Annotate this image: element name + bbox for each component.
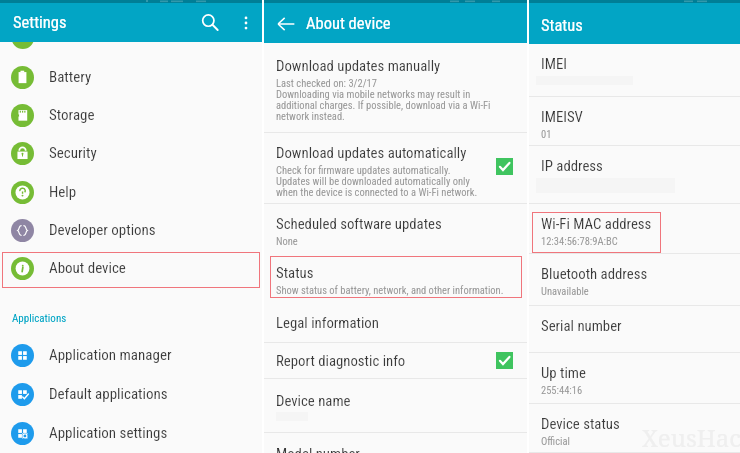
staticText: Application manager [49,346,172,364]
staticText: XeusHack [642,421,740,453]
staticText: 255:44:16 [541,384,583,396]
staticText: Battery [49,68,92,86]
button[interactable]: Default applications [0,375,262,413]
staticText: Bluetooth address [541,265,648,282]
button[interactable]: Wi-Fi MAC address [529,204,740,254]
staticText: About device [306,14,391,33]
staticText: Serial number [541,317,622,334]
staticText: IMEI [541,55,567,72]
staticText: Legal information [276,314,379,331]
staticText: Report diagnostic info [276,352,406,369]
button[interactable]: About device [0,249,262,287]
button[interactable]: Storage [0,96,262,134]
staticText: Status [541,16,583,35]
button[interactable]: Serial number [529,306,740,353]
staticText: 12:34:56:78:9A:BC [541,235,618,247]
button[interactable]: Model number [264,433,527,453]
button[interactable]: IMEISV [529,97,740,146]
staticText: Official [541,435,570,447]
staticText: Help [49,183,77,201]
button[interactable]: More options [234,11,258,35]
staticText: Unavailable [541,285,589,297]
staticText: Applications [12,312,67,325]
button[interactable]: Help [0,173,262,211]
button[interactable]: Legal information [264,302,527,342]
staticText: Settings [13,13,67,32]
staticText: About device [49,259,126,277]
staticText: Download updates automatically [276,144,467,161]
staticText: Storage [49,106,95,124]
staticText: None [276,235,298,247]
button[interactable]: Application manager [0,336,262,374]
button[interactable]: Security [0,134,262,172]
button[interactable]: Download updates automatically [264,133,527,203]
staticText: Wi-Fi MAC address [541,215,652,232]
button[interactable]: Scheduled software updates [264,204,527,254]
button[interactable]: Device status [529,404,740,453]
staticText: IP address [541,157,603,174]
staticText: Application settings [49,424,168,442]
staticText: Check for firmware updates automatically… [276,164,478,199]
button[interactable]: Bluetooth address [529,254,740,306]
button[interactable]: IP address [529,146,740,204]
button[interactable]: Application settings [0,414,262,452]
button[interactable]: Search [198,11,222,35]
staticText: Up time [541,364,586,381]
staticText: Last checked on: 3/2/17 Downloading via … [276,77,491,123]
staticText: Status [276,264,314,281]
staticText: Download updates manually [276,57,441,74]
staticText: Default applications [49,385,168,403]
button[interactable]: Developer options [0,211,262,249]
staticText: Device name [276,392,351,409]
button[interactable]: Report diagnostic info [264,343,527,378]
button[interactable]: Device name [264,379,527,432]
button[interactable]: Back [275,13,297,35]
button[interactable]: Download updates manually [264,43,527,132]
button[interactable] [2,252,260,288]
staticText: Security [49,144,97,162]
button[interactable]: Battery [0,58,262,96]
button[interactable]: Status [270,256,522,298]
staticText: Model number [276,445,360,453]
button[interactable]: Up time [529,353,740,404]
staticText: IMEISV [541,108,583,125]
button[interactable]: IMEI [529,44,740,97]
staticText: Show status of battery, network, and oth… [276,284,504,296]
staticText: Scheduled software updates [276,215,442,232]
staticText: Device status [541,415,620,432]
staticText: 01 [541,128,552,140]
staticText: Developer options [49,221,156,239]
